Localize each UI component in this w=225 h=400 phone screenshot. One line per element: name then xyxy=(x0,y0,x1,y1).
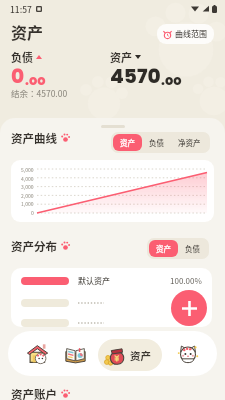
button[interactable]: Home xyxy=(21,341,55,367)
staticText: 5,000 xyxy=(21,166,34,173)
staticText: 4,000 xyxy=(21,175,34,182)
button[interactable]: 资产 xyxy=(98,339,162,371)
button[interactable]: Profile xyxy=(173,341,203,367)
staticText: 11:57 xyxy=(10,3,32,15)
staticText: 负债 xyxy=(149,137,164,148)
staticText: 2,000 xyxy=(21,192,34,199)
staticText: 结余：4570.00 xyxy=(11,87,68,99)
button[interactable]: 曲线范围 xyxy=(157,24,214,44)
button[interactable]: 负债 xyxy=(142,134,171,151)
staticText: 资产账户 xyxy=(11,386,57,400)
staticText: 0 xyxy=(11,62,25,90)
staticText: 资产分布 xyxy=(11,238,57,255)
staticText: 负债 xyxy=(11,49,33,65)
button[interactable]: Add xyxy=(171,290,207,326)
staticText: 1,000 xyxy=(21,200,34,207)
staticText: 负债 xyxy=(185,243,200,254)
staticText: 资产 xyxy=(11,20,44,43)
staticText: 0 xyxy=(31,209,34,216)
staticText: 资产 xyxy=(120,137,135,148)
staticText: 3,000 xyxy=(21,183,34,190)
button[interactable]: 负债 xyxy=(178,240,207,257)
staticText: .oo xyxy=(25,71,46,89)
button[interactable]: 资产 xyxy=(149,240,178,257)
staticText: 资产 xyxy=(110,49,132,65)
staticText: 资产曲线 xyxy=(11,130,57,147)
button[interactable]: 净资产 xyxy=(171,134,208,151)
staticText: 净资产 xyxy=(178,137,201,148)
staticText: 默认资产 xyxy=(78,275,110,287)
button[interactable]: 资产 xyxy=(113,134,142,151)
staticText: 资产 xyxy=(130,348,151,363)
staticText: 100.00% xyxy=(170,275,202,287)
staticText: 资产 xyxy=(156,243,171,254)
staticText: .oo xyxy=(161,71,182,89)
button[interactable]: Ledger xyxy=(59,341,91,367)
staticText: 4570 xyxy=(110,62,161,90)
staticText: 曲线范围 xyxy=(175,28,207,40)
